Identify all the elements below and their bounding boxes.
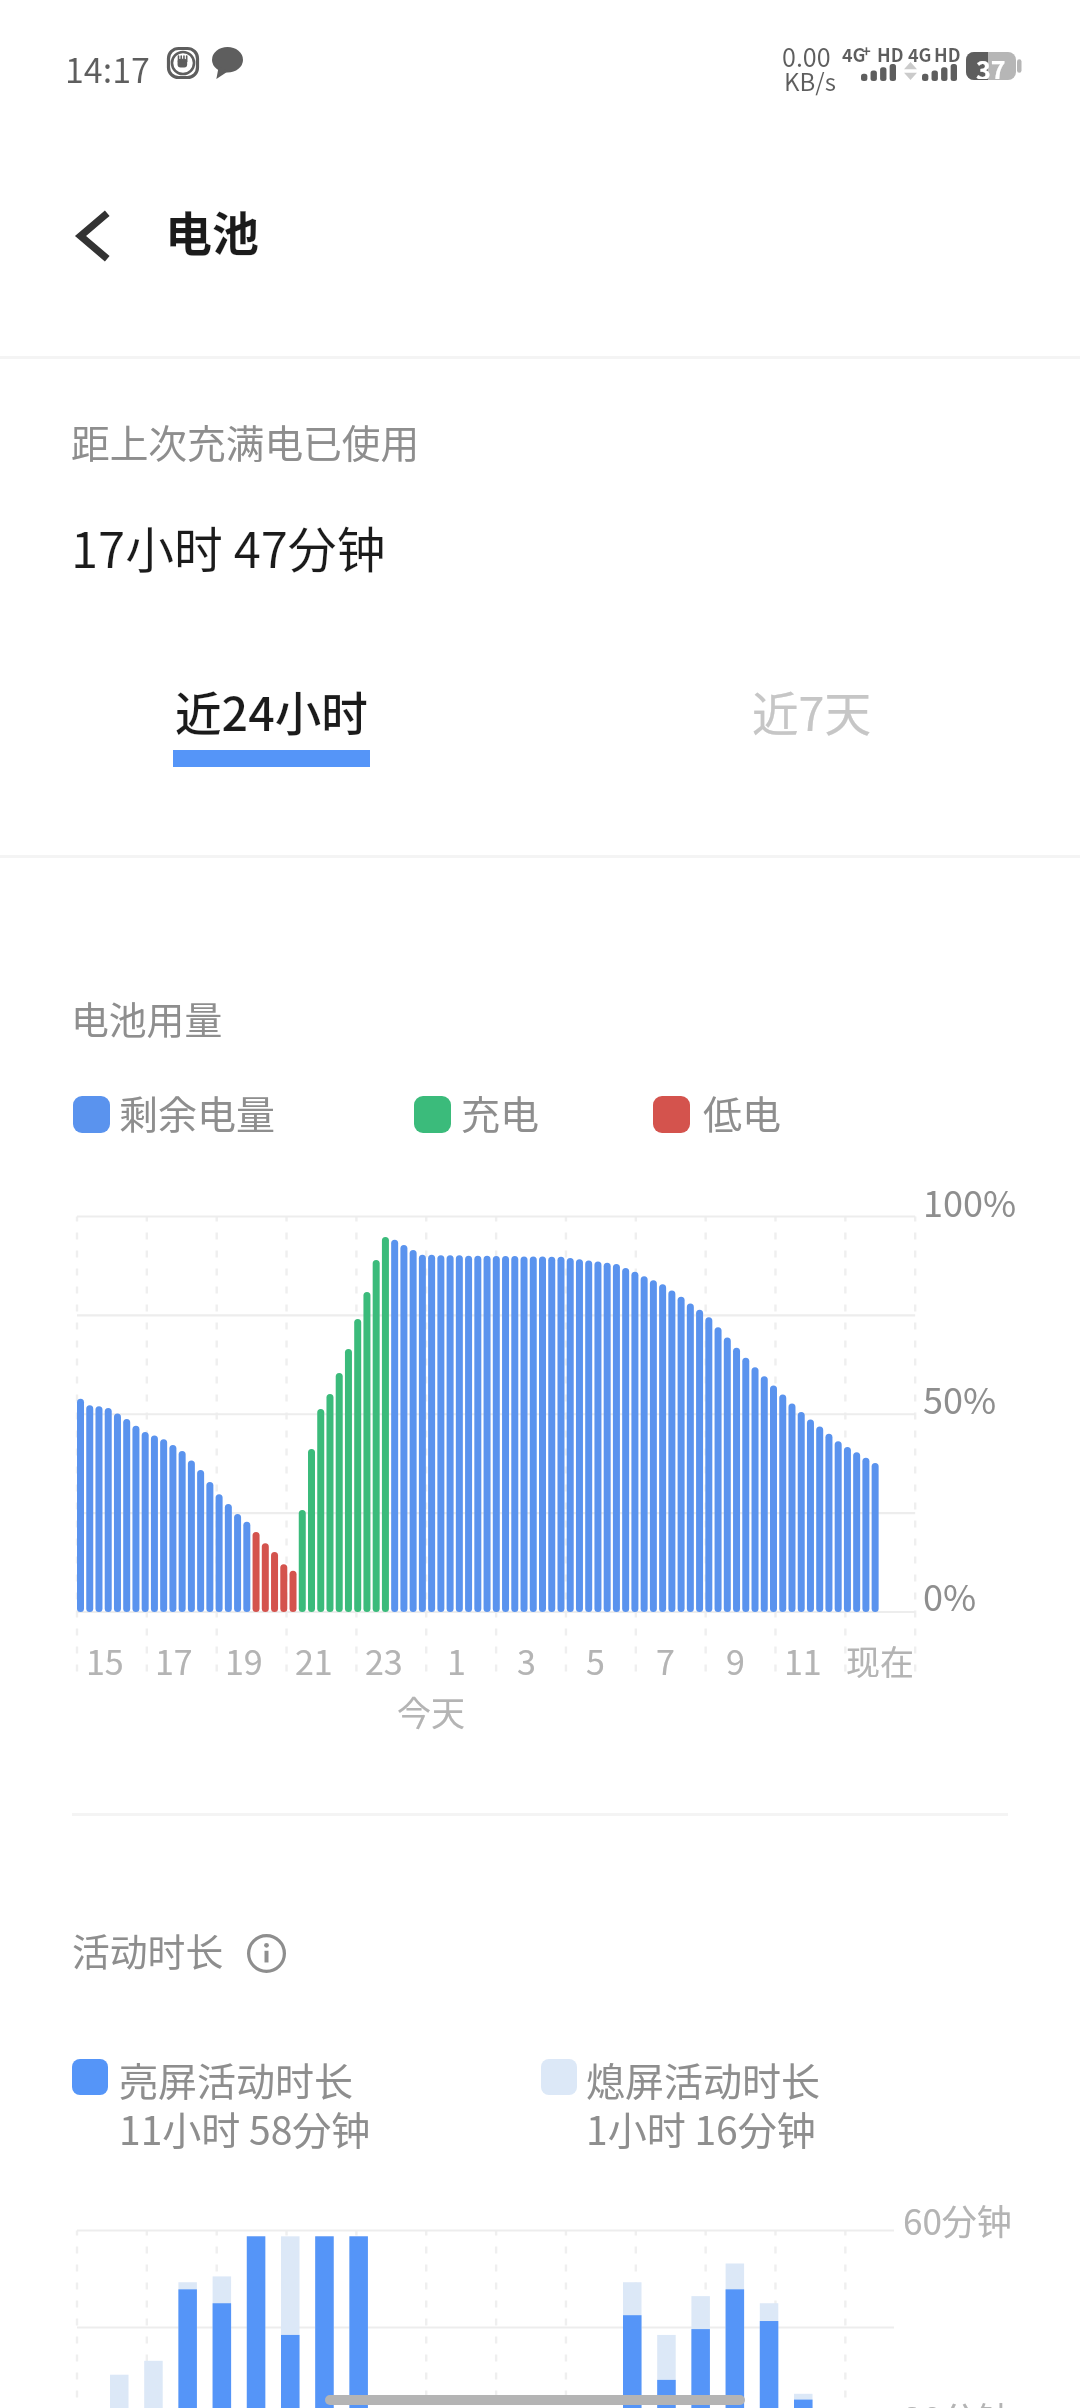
staticText: 15 — [86, 1636, 124, 1685]
staticText: 14:17 — [65, 44, 150, 93]
button[interactable]: 近24小时 — [30, 677, 512, 782]
staticText: HD — [877, 41, 904, 67]
staticText: 0.00 — [782, 38, 831, 74]
staticText: 活动时长 — [72, 1922, 224, 1977]
staticText: 11 — [784, 1636, 822, 1685]
staticText: 21 — [295, 1636, 333, 1685]
staticText: + — [862, 40, 871, 62]
staticText: 1小时 16分钟 — [586, 2100, 816, 2156]
staticText: 近7天 — [752, 677, 872, 744]
staticText: 60分钟 — [903, 2194, 1012, 2245]
staticText: 电池 — [165, 196, 259, 264]
staticText: 0% — [923, 1569, 977, 1621]
staticText: 4G — [842, 41, 866, 67]
staticText: 电池用量 — [71, 990, 223, 1045]
staticText: 23 — [365, 1636, 403, 1685]
staticText: 50% — [923, 1372, 997, 1424]
staticText: 亮屏活动时长 — [119, 2051, 354, 2107]
staticText: 9 — [726, 1636, 745, 1685]
staticText: 19 — [225, 1636, 263, 1685]
staticText: KB/s — [784, 63, 836, 98]
staticText: 低电 — [703, 1084, 782, 1140]
staticText: 4G — [908, 41, 932, 67]
staticText: 距上次充满电已使用 — [71, 413, 420, 469]
staticText: 100% — [923, 1175, 1017, 1227]
button[interactable]: 近7天 — [572, 677, 1052, 782]
staticText: HD — [934, 41, 961, 67]
staticText: 熄屏活动时长 — [586, 2051, 821, 2107]
staticText: 今天 — [397, 1687, 465, 1736]
button[interactable]: Info — [243, 1930, 289, 1976]
staticText: 现在 — [846, 1636, 914, 1685]
staticText: 1 — [447, 1636, 466, 1685]
staticText: 5 — [586, 1636, 605, 1685]
staticText: 11小时 58分钟 — [119, 2100, 371, 2156]
staticText: 充电 — [461, 1084, 540, 1140]
staticText: 30分钟 — [903, 2392, 1012, 2408]
staticText: 近24小时 — [175, 677, 368, 744]
staticText: 3 — [517, 1636, 536, 1685]
staticText: 37 — [976, 51, 1006, 79]
staticText: 7 — [656, 1636, 675, 1685]
button[interactable]: Back — [44, 188, 140, 284]
staticText: 17 — [155, 1636, 193, 1685]
staticText: 剩余电量 — [119, 1084, 276, 1140]
staticText: 17小时 47分钟 — [71, 511, 386, 582]
